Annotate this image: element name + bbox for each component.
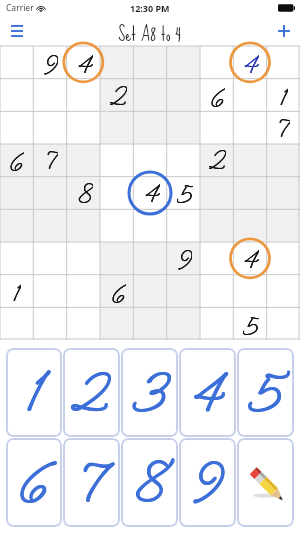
button[interactable]: [102, 142, 135, 175]
button[interactable]: [34, 208, 68, 241]
button[interactable]: [201, 307, 234, 340]
button[interactable]: [34, 307, 68, 340]
button[interactable]: [234, 78, 267, 110]
staticText: 4: [243, 46, 259, 78]
button[interactable]: 1: [267, 78, 300, 110]
button[interactable]: [267, 307, 300, 340]
button[interactable]: 9: [34, 46, 68, 78]
button[interactable]: [135, 46, 168, 78]
button[interactable]: [68, 241, 102, 274]
button[interactable]: Pencil notes: [237, 438, 294, 527]
button[interactable]: 6: [102, 274, 135, 307]
button[interactable]: [102, 175, 135, 208]
button[interactable]: [102, 110, 135, 142]
button[interactable]: [0, 208, 34, 241]
button[interactable]: [135, 307, 168, 340]
staticText: 9: [44, 46, 58, 78]
button[interactable]: 3: [121, 348, 178, 437]
button[interactable]: 4: [234, 46, 267, 78]
button[interactable]: [201, 175, 234, 208]
button[interactable]: [102, 307, 135, 340]
button[interactable]: [135, 110, 168, 142]
button[interactable]: [234, 208, 267, 241]
button[interactable]: [168, 142, 201, 175]
staticText: 6: [112, 274, 126, 307]
button[interactable]: [34, 274, 68, 307]
button[interactable]: [0, 78, 34, 110]
button[interactable]: 2: [102, 78, 135, 110]
button[interactable]: [0, 46, 34, 78]
staticText: 6: [20, 442, 50, 526]
button[interactable]: 6: [201, 78, 234, 110]
button[interactable]: 4: [179, 348, 236, 437]
button[interactable]: [68, 110, 102, 142]
button[interactable]: 5: [234, 307, 267, 340]
button[interactable]: 4: [234, 241, 267, 274]
button[interactable]: [135, 274, 168, 307]
button[interactable]: [34, 110, 68, 142]
button[interactable]: 4: [68, 46, 102, 78]
button[interactable]: 7: [63, 438, 120, 527]
button[interactable]: [168, 78, 201, 110]
button[interactable]: 9: [168, 241, 201, 274]
button[interactable]: 6: [6, 438, 62, 527]
button[interactable]: [201, 110, 234, 142]
button[interactable]: [0, 110, 34, 142]
staticText: 5: [177, 175, 193, 208]
button[interactable]: 8: [121, 438, 178, 527]
button[interactable]: [102, 241, 135, 274]
button[interactable]: 2: [63, 348, 120, 437]
button[interactable]: 5: [168, 175, 201, 208]
button[interactable]: 1: [0, 274, 34, 307]
button[interactable]: [168, 110, 201, 142]
button[interactable]: [102, 46, 135, 78]
button[interactable]: [34, 78, 68, 110]
staticText: 5: [243, 307, 259, 340]
button[interactable]: 4: [135, 175, 168, 208]
button[interactable]: 2: [201, 142, 234, 175]
button[interactable]: [0, 241, 34, 274]
button[interactable]: [68, 142, 102, 175]
button[interactable]: [68, 307, 102, 340]
button[interactable]: [102, 208, 135, 241]
button[interactable]: [201, 274, 234, 307]
button[interactable]: 9: [179, 438, 236, 527]
button[interactable]: [234, 175, 267, 208]
button[interactable]: 8: [68, 175, 102, 208]
button[interactable]: [234, 110, 267, 142]
button[interactable]: [135, 208, 168, 241]
button[interactable]: [201, 208, 234, 241]
button[interactable]: [267, 46, 300, 78]
button[interactable]: 7: [267, 110, 300, 142]
button[interactable]: [267, 274, 300, 307]
button[interactable]: [267, 241, 300, 274]
button[interactable]: 7: [34, 142, 68, 175]
button[interactable]: [34, 175, 68, 208]
button[interactable]: [135, 142, 168, 175]
button[interactable]: Menu: [0, 16, 33, 46]
button[interactable]: [68, 274, 102, 307]
button[interactable]: [0, 307, 34, 340]
button[interactable]: [34, 241, 68, 274]
button[interactable]: [267, 142, 300, 175]
button[interactable]: [68, 208, 102, 241]
button[interactable]: [267, 208, 300, 241]
button[interactable]: [234, 142, 267, 175]
button[interactable]: [168, 208, 201, 241]
staticText: 8: [78, 175, 93, 208]
button[interactable]: 5: [237, 348, 294, 437]
button[interactable]: [68, 78, 102, 110]
button[interactable]: [201, 46, 234, 78]
button[interactable]: [267, 175, 300, 208]
button[interactable]: [168, 46, 201, 78]
button[interactable]: [201, 241, 234, 274]
button[interactable]: [0, 175, 34, 208]
button[interactable]: [135, 241, 168, 274]
button[interactable]: [135, 78, 168, 110]
button[interactable]: [234, 274, 267, 307]
button[interactable]: [168, 307, 201, 340]
button[interactable]: 6: [0, 142, 34, 175]
button[interactable]: Add: [268, 16, 300, 46]
button[interactable]: 1: [6, 348, 62, 437]
button[interactable]: [168, 274, 201, 307]
